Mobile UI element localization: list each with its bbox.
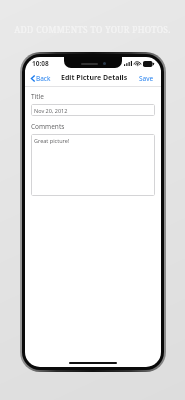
staticText: Comments bbox=[31, 122, 65, 131]
staticText: Title bbox=[31, 92, 44, 101]
staticText: ADD COMMENTS TO YOUR PHOTOS. bbox=[14, 24, 171, 36]
staticText: Nov 20, 2012 bbox=[34, 107, 68, 114]
staticText: 10:08 bbox=[32, 59, 49, 68]
staticText: Great picture! bbox=[34, 137, 70, 144]
staticText: Edit Picture Details bbox=[61, 73, 128, 83]
button[interactable]: Great picture! bbox=[31, 134, 155, 196]
button[interactable]: Nov 20, 2012 bbox=[31, 104, 155, 116]
button[interactable]: Back bbox=[30, 72, 52, 85]
button[interactable]: Save bbox=[137, 72, 156, 85]
staticText: Save bbox=[139, 74, 154, 83]
staticText: Back bbox=[36, 74, 51, 83]
